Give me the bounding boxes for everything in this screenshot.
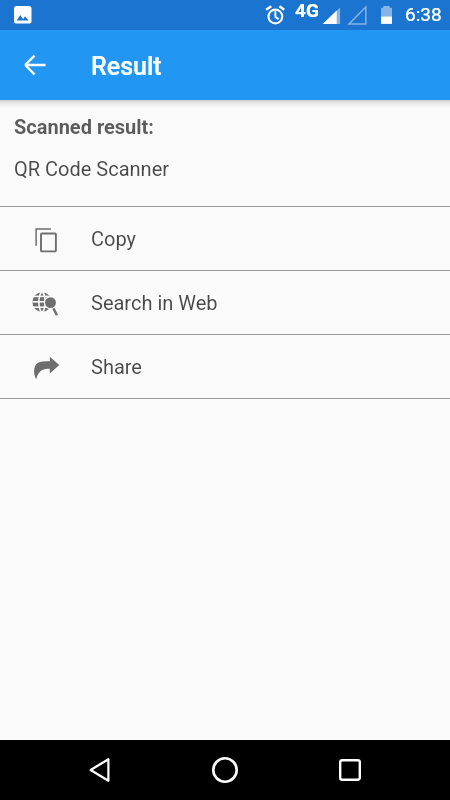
staticText: 6:38 <box>405 3 442 25</box>
staticText: QR Code Scanner <box>14 157 170 180</box>
button[interactable]: Share <box>0 335 450 398</box>
staticText: Result <box>91 52 162 81</box>
staticText: 4G <box>295 0 319 21</box>
button[interactable]: Recent apps <box>325 745 375 795</box>
staticText: Search in Web <box>91 291 218 314</box>
button[interactable]: Home <box>200 745 250 795</box>
staticText: Scanned result: <box>14 115 154 138</box>
button[interactable]: Copy <box>0 207 450 270</box>
staticText: Copy <box>91 227 137 250</box>
button[interactable]: Search in Web <box>0 271 450 334</box>
button[interactable]: Back <box>75 745 125 795</box>
staticText: Share <box>91 355 142 378</box>
button[interactable]: Navigate up <box>11 41 59 89</box>
